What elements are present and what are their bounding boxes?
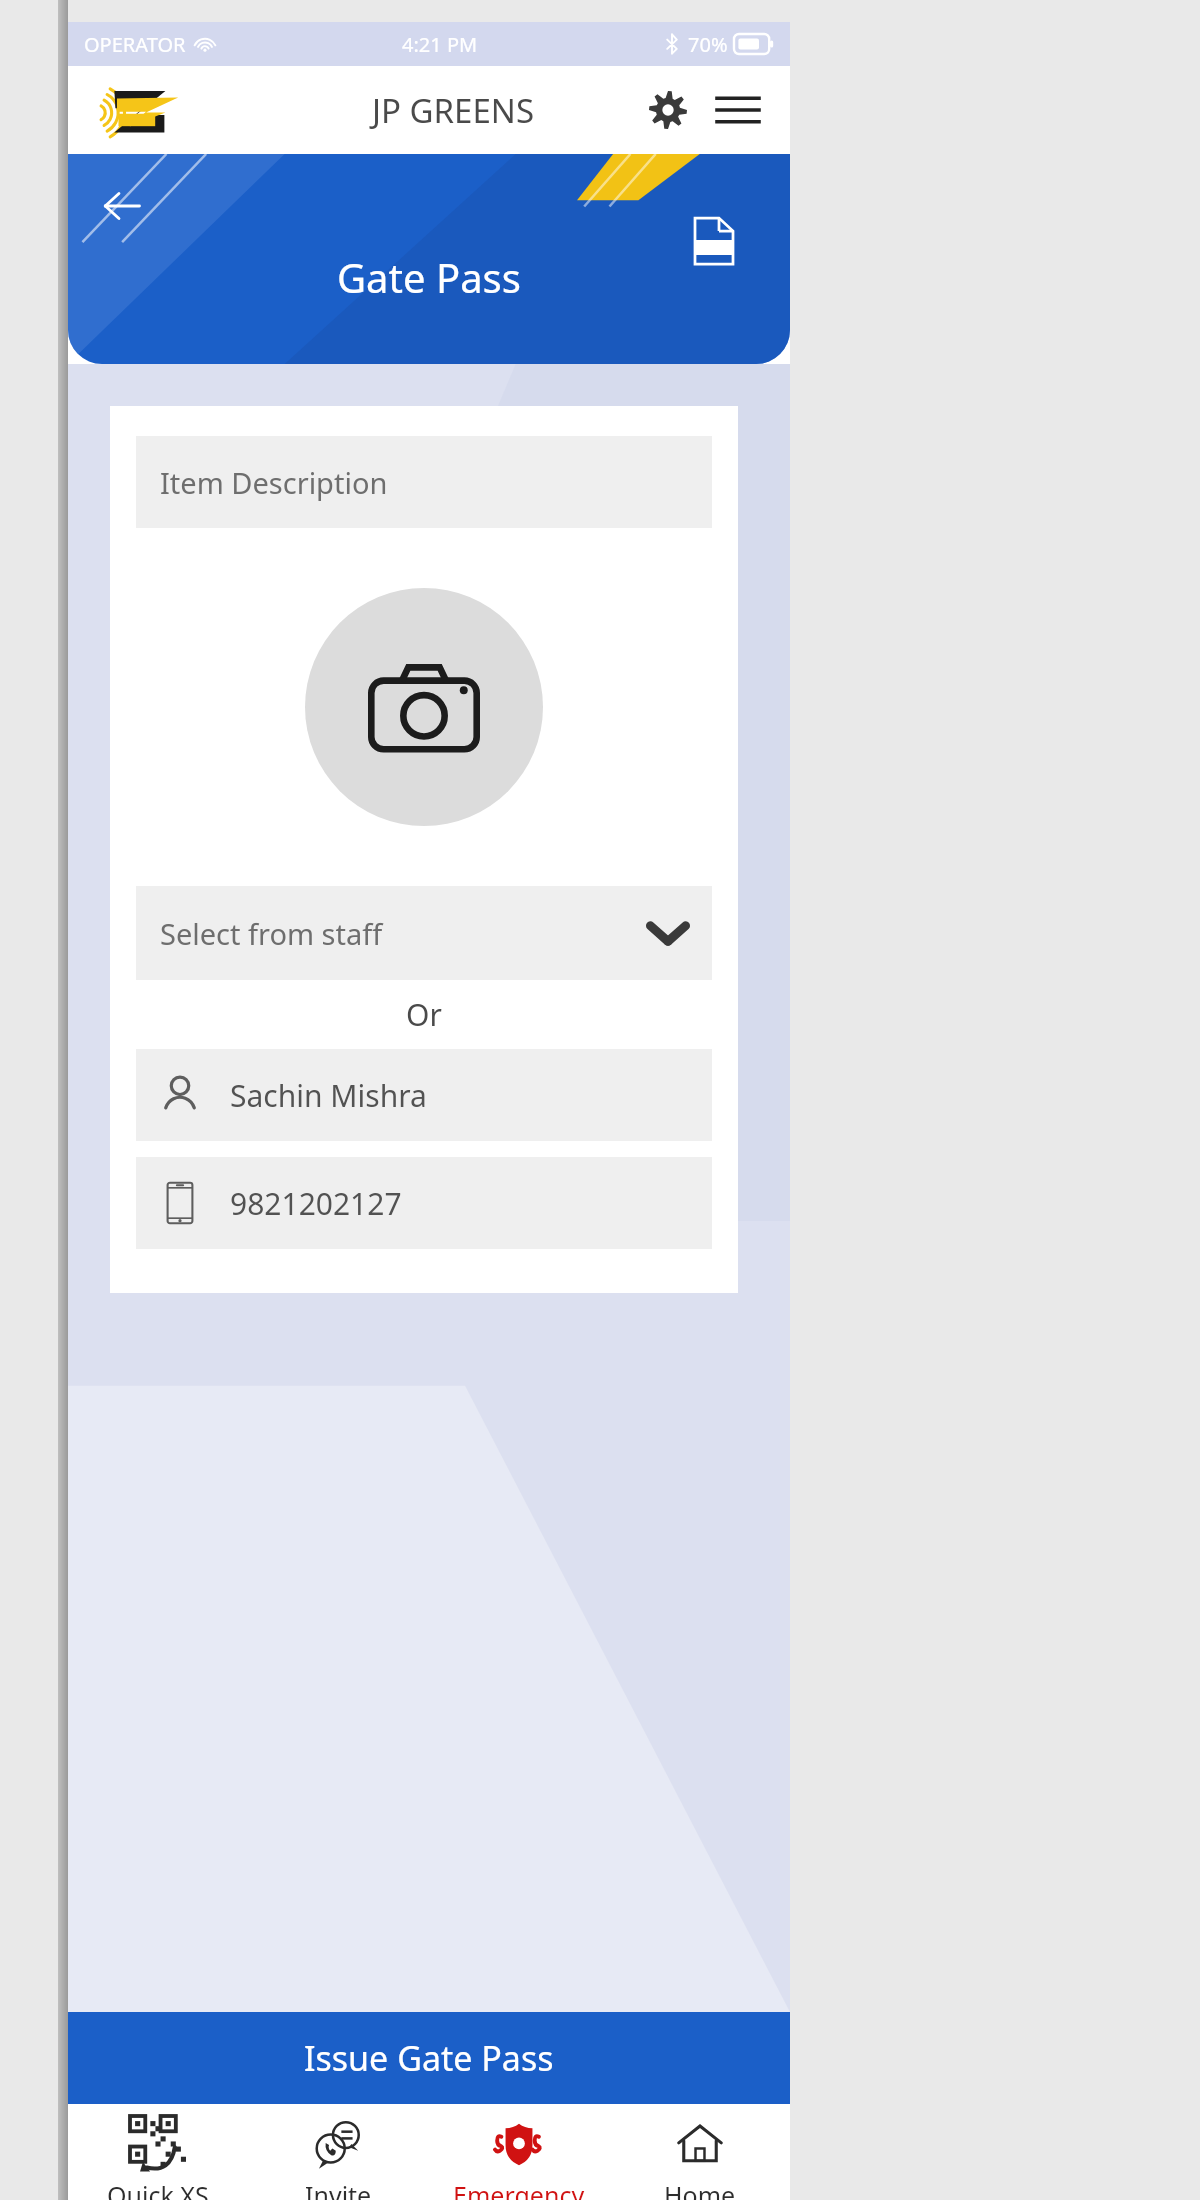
- button[interactable]: Emergency: [428, 2104, 609, 2200]
- button[interactable]: Menu: [712, 84, 764, 136]
- staticText: Home: [664, 2178, 736, 2200]
- staticText: 70%: [688, 31, 728, 58]
- staticText: Gate Pass: [337, 250, 521, 304]
- staticText: Quick XS: [107, 2178, 209, 2200]
- staticText: Select from staff: [160, 914, 383, 953]
- button[interactable]: Take photo: [305, 588, 543, 826]
- staticText: Or: [136, 994, 712, 1035]
- button[interactable]: Home: [609, 2104, 790, 2200]
- button[interactable]: Quick XS: [68, 2104, 248, 2200]
- staticText: Issue Gate Pass: [304, 2035, 554, 2081]
- staticText: Sachin Mishra: [230, 1075, 427, 1116]
- button[interactable]: Sachin Mishra: [136, 1049, 712, 1141]
- staticText: Emergency: [453, 2178, 585, 2200]
- button[interactable]: 9821202127: [136, 1157, 712, 1249]
- button[interactable]: Item Description: [136, 436, 712, 528]
- button[interactable]: Invite: [248, 2104, 428, 2200]
- button[interactable]: Select from staff: [136, 886, 712, 980]
- staticText: OPERATOR: [84, 31, 186, 58]
- other: zaccess logo: [94, 82, 264, 138]
- staticText: 4:21 PM: [402, 31, 478, 58]
- button[interactable]: Settings: [642, 84, 694, 136]
- staticText: 9821202127: [230, 1183, 402, 1224]
- staticText: Item Description: [160, 463, 388, 502]
- button[interactable]: Log: [682, 210, 744, 272]
- staticText: JP GREENS: [372, 88, 534, 133]
- button[interactable]: Issue Gate Pass: [68, 2012, 790, 2104]
- staticText: Invite: [305, 2178, 372, 2200]
- button[interactable]: Back: [94, 178, 150, 234]
